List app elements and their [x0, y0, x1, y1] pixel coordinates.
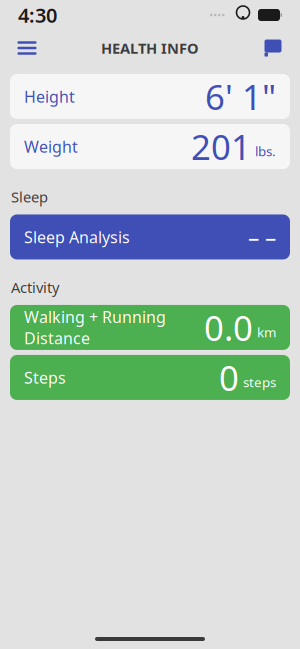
- staticText: 201: [191, 123, 251, 169]
- button[interactable]: Steps: [10, 355, 290, 400]
- staticText: Sleep: [11, 187, 48, 206]
- staticText: Activity: [11, 277, 59, 297]
- staticText: 0: [219, 354, 239, 400]
- staticText: Height: [24, 86, 75, 107]
- staticText: Weight: [24, 136, 78, 157]
- button[interactable]: Sleep Analysis: [10, 214, 290, 259]
- staticText: Steps: [24, 367, 66, 388]
- staticText: HEALTH INFO: [101, 38, 199, 58]
- staticText: Sleep Analysis: [24, 226, 130, 248]
- button[interactable]: Messages: [253, 31, 293, 65]
- staticText: 6' 1": [205, 73, 276, 119]
- staticText: steps: [243, 373, 276, 391]
- staticText: Walking + Running Distance: [24, 306, 166, 349]
- staticText: km: [257, 323, 276, 341]
- button[interactable]: Height: [10, 74, 290, 119]
- button[interactable]: Weight: [10, 124, 290, 169]
- staticText: lbs.: [255, 142, 276, 160]
- staticText: 4:30: [18, 2, 57, 28]
- staticText: 0.0: [204, 304, 253, 350]
- staticText: – –: [248, 222, 276, 252]
- button[interactable]: Walking + Running Distance: [10, 305, 290, 350]
- button[interactable]: Menu: [7, 31, 47, 65]
